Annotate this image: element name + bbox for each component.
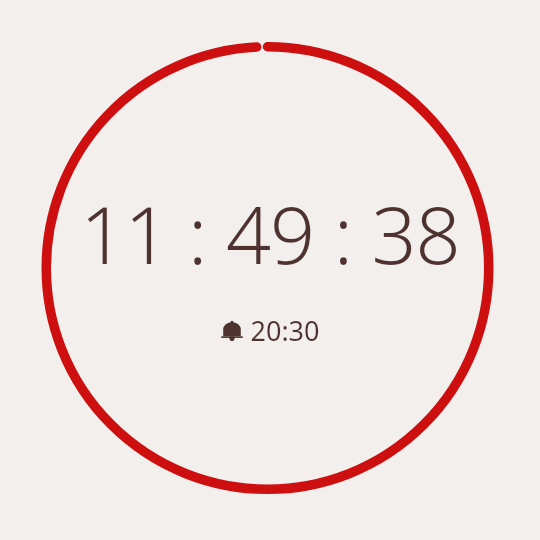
button[interactable]: Alarm (221, 312, 320, 349)
other: Alarm (221, 320, 243, 342)
staticText: 11 : 49 : 38 (80, 180, 460, 288)
staticText: 20:30 (250, 312, 320, 349)
button[interactable]: 11 : 49 : 38 (55, 180, 485, 349)
